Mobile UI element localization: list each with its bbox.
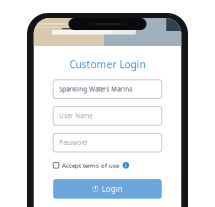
button[interactable]: Login <box>53 179 162 199</box>
button[interactable]: Password <box>53 133 162 152</box>
button[interactable]: Sparkling Waters Marina <box>53 80 162 98</box>
staticText: Customer Login <box>69 57 145 71</box>
staticText: Accept terms of use <box>62 161 119 169</box>
button[interactable]: Accept terms of use <box>53 161 119 169</box>
staticText: Password <box>59 138 87 147</box>
staticText: Sparkling Waters Marina <box>59 85 132 93</box>
button[interactable]: User Name <box>53 107 162 125</box>
staticText: User Name <box>59 112 92 120</box>
staticText: Login <box>102 183 123 194</box>
button[interactable]: Terms of use information <box>122 162 129 169</box>
